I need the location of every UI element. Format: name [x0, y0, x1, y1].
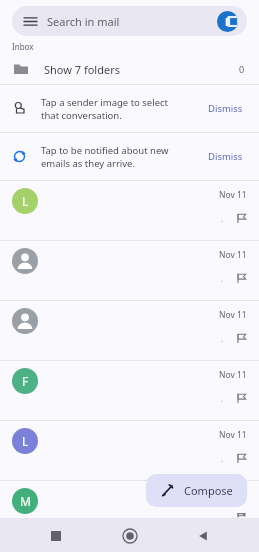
button[interactable]: F — [0, 361, 259, 421]
button[interactable]: Open navigation menu — [12, 6, 247, 36]
button[interactable]: Flag — [236, 333, 247, 344]
staticText: . — [221, 213, 224, 224]
staticText: Nov 11 — [219, 189, 247, 201]
staticText: Nov 11 — [219, 489, 247, 501]
button[interactable]: Dismiss — [204, 96, 247, 121]
button[interactable]: Nov 11 — [0, 301, 259, 361]
staticText: F — [22, 373, 29, 389]
staticText: L — [22, 193, 29, 209]
button[interactable]: Nov 11 — [0, 241, 259, 301]
button[interactable]: Home — [113, 519, 147, 552]
staticText: Nov 11 — [219, 309, 247, 321]
staticText: Tap to be notified about new — [41, 144, 169, 157]
button[interactable]: Flag — [236, 453, 247, 464]
button[interactable]: Flag — [236, 393, 247, 404]
button[interactable]: Tap a sender image to select — [0, 85, 259, 132]
staticText: Inbox — [12, 41, 34, 52]
staticText: . — [221, 453, 224, 464]
staticText: L — [22, 433, 29, 449]
staticText: 0 — [239, 63, 245, 75]
staticText: . — [221, 273, 224, 284]
button[interactable]: Account — [217, 11, 238, 32]
button[interactable]: Recents — [39, 519, 73, 552]
staticText: Tap a sender image to select — [41, 96, 169, 109]
staticText: emails as they arrive. — [41, 157, 135, 170]
staticText: Nov 11 — [219, 429, 247, 441]
staticText: . — [221, 333, 224, 344]
button[interactable]: Show 7 folders — [0, 54, 259, 84]
staticText: Dismiss — [208, 102, 243, 115]
staticText: Nov 11 — [219, 249, 247, 261]
staticText: Search in mail — [47, 14, 120, 29]
button[interactable]: L — [0, 181, 259, 241]
staticText: Dismiss — [208, 150, 243, 163]
button[interactable]: Open navigation menu — [21, 12, 39, 30]
button[interactable]: Back — [186, 519, 220, 552]
button[interactable]: Compose — [146, 474, 247, 507]
button[interactable]: M — [0, 481, 259, 519]
button[interactable]: Flag — [236, 273, 247, 284]
staticText: Nov 11 — [219, 369, 247, 381]
staticText: M — [20, 493, 31, 509]
staticText: . — [221, 393, 224, 404]
staticText: E — [225, 15, 231, 29]
button[interactable]: L — [0, 421, 259, 481]
button[interactable]: Dismiss — [204, 144, 247, 169]
button[interactable]: Flag — [236, 213, 247, 224]
button[interactable]: Flag — [236, 513, 247, 518]
button[interactable]: Tap to be notified about new — [0, 133, 259, 180]
staticText: that conversation. — [41, 109, 122, 122]
staticText: Show 7 folders — [44, 62, 120, 77]
staticText: Compose — [184, 483, 233, 498]
